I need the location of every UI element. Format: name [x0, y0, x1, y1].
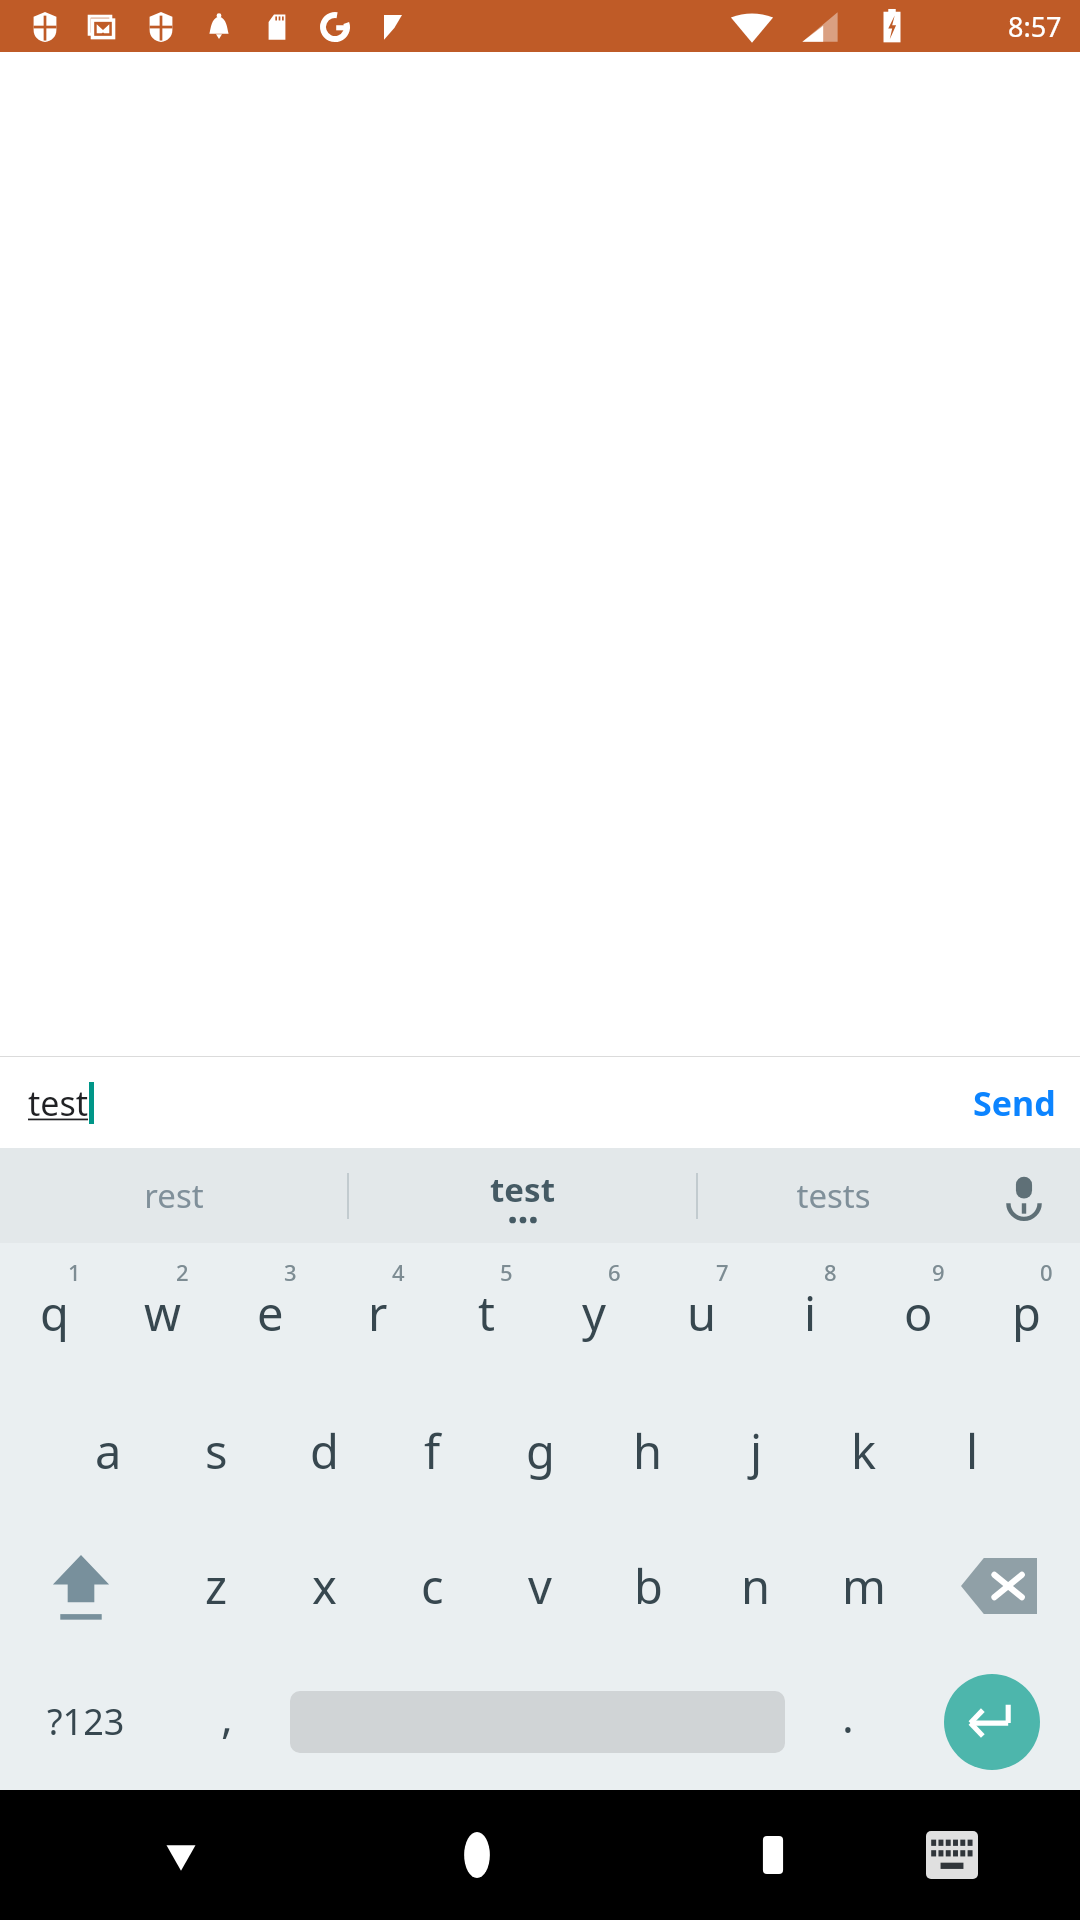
button[interactable]: q — [0, 1243, 108, 1383]
staticText: o — [904, 1281, 933, 1345]
button[interactable]: h — [594, 1383, 702, 1518]
staticText: test — [28, 1080, 89, 1126]
staticText: n — [741, 1554, 771, 1618]
button[interactable]: u — [648, 1243, 756, 1383]
button[interactable]: t — [432, 1243, 540, 1383]
staticText: m — [842, 1554, 886, 1618]
staticText: 9 — [932, 1257, 945, 1287]
button[interactable]: a — [54, 1383, 162, 1518]
button[interactable]: Space — [282, 1653, 792, 1790]
button[interactable]: Backspace — [918, 1518, 1080, 1653]
button[interactable]: Recent apps — [693, 1790, 853, 1920]
staticText: 4 — [392, 1257, 405, 1287]
staticText: w — [144, 1281, 181, 1345]
button[interactable]: Home — [397, 1790, 557, 1920]
button[interactable]: ?123 — [0, 1653, 171, 1790]
button[interactable]: , — [171, 1653, 282, 1790]
staticText: j — [750, 1419, 763, 1483]
staticText: tests — [796, 1173, 871, 1218]
staticText: u — [687, 1281, 717, 1345]
button[interactable]: s — [162, 1383, 270, 1518]
staticText: ?123 — [47, 1697, 125, 1746]
button[interactable]: d — [270, 1383, 378, 1518]
button[interactable]: l — [918, 1383, 1026, 1518]
staticText: 3 — [284, 1257, 297, 1287]
staticText: . — [842, 1686, 854, 1746]
button[interactable]: e — [216, 1243, 324, 1383]
staticText: 8:57 — [1008, 8, 1062, 45]
staticText: r — [368, 1281, 388, 1345]
button[interactable]: x — [270, 1518, 378, 1653]
staticText: c — [421, 1554, 444, 1618]
button[interactable]: p — [972, 1243, 1080, 1383]
button[interactable]: Back — [100, 1790, 261, 1920]
staticText: i — [804, 1281, 817, 1345]
button[interactable]: i — [756, 1243, 864, 1383]
staticText: b — [634, 1554, 663, 1618]
button[interactable]: n — [702, 1518, 810, 1653]
staticText: , — [221, 1686, 233, 1746]
staticText: test — [490, 1167, 555, 1212]
staticText: rest — [144, 1173, 204, 1218]
staticText: q — [40, 1281, 69, 1345]
staticText: y — [582, 1281, 606, 1345]
staticText: e — [257, 1281, 284, 1345]
button[interactable]: v — [486, 1518, 594, 1653]
button[interactable]: w — [108, 1243, 216, 1383]
button[interactable]: Voice input — [968, 1148, 1080, 1243]
staticText: 1 — [68, 1257, 81, 1287]
staticText: g — [526, 1419, 555, 1483]
staticText: 7 — [716, 1257, 729, 1287]
button[interactable]: r — [324, 1243, 432, 1383]
button[interactable]: test — [0, 1057, 949, 1148]
staticText: Send — [973, 1080, 1056, 1126]
staticText: x — [312, 1554, 337, 1618]
button[interactable]: Enter — [903, 1653, 1080, 1790]
button[interactable]: m — [810, 1518, 918, 1653]
staticText: 0 — [1040, 1257, 1053, 1287]
button[interactable]: tests — [698, 1148, 968, 1243]
button[interactable]: rest — [0, 1148, 347, 1243]
staticText: s — [205, 1419, 228, 1483]
button[interactable]: test — [349, 1148, 696, 1243]
button[interactable]: y — [540, 1243, 648, 1383]
staticText: 6 — [608, 1257, 621, 1287]
button[interactable]: f — [378, 1383, 486, 1518]
staticText: k — [851, 1419, 877, 1483]
button[interactable]: k — [810, 1383, 918, 1518]
staticText: h — [633, 1419, 663, 1483]
staticText: l — [966, 1419, 979, 1483]
staticText: t — [478, 1281, 495, 1345]
staticText: a — [95, 1419, 122, 1483]
button[interactable]: j — [702, 1383, 810, 1518]
staticText: 8 — [824, 1257, 837, 1287]
button[interactable]: . — [792, 1653, 903, 1790]
staticText: 5 — [500, 1257, 513, 1287]
staticText: d — [310, 1419, 339, 1483]
button[interactable]: g — [486, 1383, 594, 1518]
staticText: z — [205, 1554, 228, 1618]
button[interactable]: Switch keyboard — [872, 1790, 1032, 1920]
button[interactable]: o — [864, 1243, 972, 1383]
staticText: v — [528, 1554, 552, 1618]
button[interactable]: c — [378, 1518, 486, 1653]
button[interactable]: b — [594, 1518, 702, 1653]
button[interactable]: Send — [949, 1057, 1080, 1148]
staticText: f — [424, 1419, 441, 1483]
staticText: p — [1012, 1281, 1041, 1345]
staticText: 2 — [176, 1257, 189, 1287]
button[interactable]: z — [162, 1518, 270, 1653]
button[interactable]: Shift — [0, 1518, 162, 1653]
